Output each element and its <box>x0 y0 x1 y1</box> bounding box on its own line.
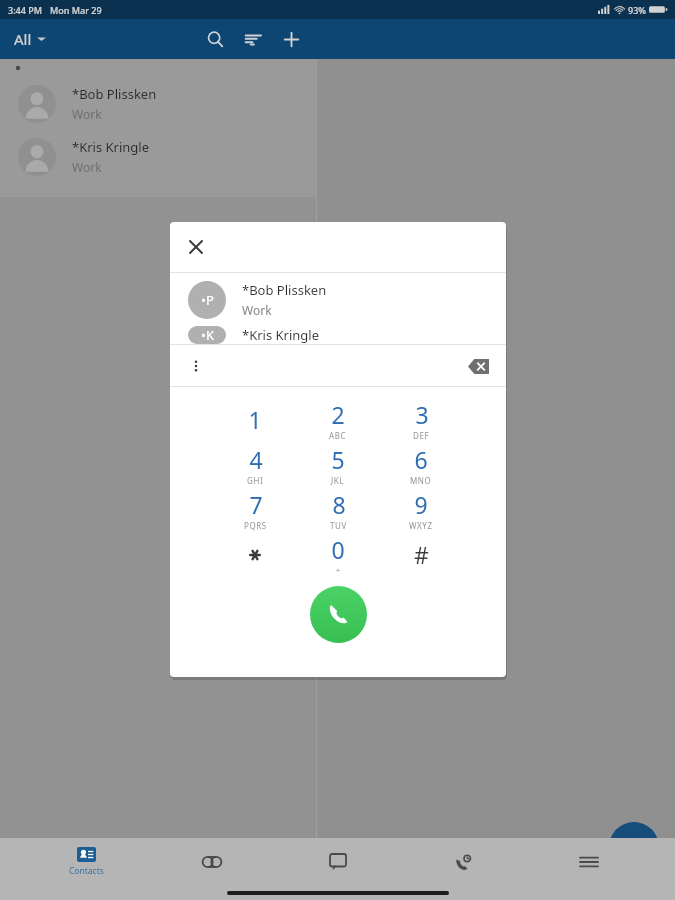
button[interactable] <box>220 532 290 577</box>
button[interactable]: *Kris Kringle <box>0 130 316 183</box>
staticText: PQRS <box>244 520 267 531</box>
staticText: *Bob Plissken <box>242 281 327 299</box>
staticText: *Kris Kringle <box>72 138 150 156</box>
staticText: •K <box>201 326 214 344</box>
staticText: + <box>336 566 341 576</box>
staticText: 4 <box>249 444 263 475</box>
staticText: *Bob Plissken <box>72 85 157 103</box>
button[interactable]: Close <box>178 229 214 265</box>
staticText: MNO <box>410 475 432 486</box>
staticText: 6 <box>414 444 428 475</box>
button[interactable]: •P <box>170 273 506 326</box>
button[interactable]: Sort <box>236 22 270 56</box>
staticText: Work <box>72 159 102 175</box>
staticText: Contacts <box>69 865 104 877</box>
button[interactable]: 2 <box>303 397 373 442</box>
button[interactable]: Tab <box>298 838 378 886</box>
button[interactable]: •K <box>170 326 506 344</box>
staticText: •P <box>201 291 214 309</box>
staticText: WXYZ <box>409 520 433 531</box>
button[interactable]: All <box>12 25 48 53</box>
staticText: # <box>414 539 429 570</box>
staticText: 2 <box>331 399 345 430</box>
button[interactable]: Tab <box>172 838 252 886</box>
staticText: *Kris Kringle <box>242 326 320 344</box>
button[interactable]: Tab <box>423 838 503 886</box>
staticText: 8 <box>332 489 346 520</box>
button[interactable]: 0 <box>303 532 373 577</box>
staticText: 0 <box>331 534 345 565</box>
button[interactable]: 1 <box>220 397 290 442</box>
staticText: GHI <box>247 475 264 486</box>
button[interactable]: Call <box>310 586 367 643</box>
staticText: 3 <box>415 399 429 430</box>
staticText: 9 <box>414 489 428 520</box>
button[interactable]: 3 <box>386 397 456 442</box>
staticText: DEF <box>413 430 430 441</box>
staticText: Mon Mar 29 <box>50 4 102 16</box>
button[interactable]: 6 <box>386 442 456 487</box>
button[interactable]: Contacts <box>46 838 126 886</box>
staticText: JKL <box>331 475 345 486</box>
button[interactable]: # <box>386 532 456 577</box>
button[interactable]: 5 <box>303 442 373 487</box>
button[interactable]: Backspace <box>458 346 498 386</box>
button[interactable]: Add contact <box>274 22 308 56</box>
staticText: 3:44 PM <box>8 4 42 16</box>
button[interactable]: Dialpad <box>609 822 659 872</box>
staticText: 93% <box>628 4 646 16</box>
button[interactable]: Tab <box>549 838 629 886</box>
button[interactable]: 7 <box>220 487 290 532</box>
staticText: Work <box>242 302 272 318</box>
staticText: 5 <box>331 444 345 475</box>
staticText: Work <box>72 106 102 122</box>
button[interactable]: 9 <box>386 487 456 532</box>
button[interactable]: Search <box>198 22 232 56</box>
staticText: 1 <box>248 404 262 435</box>
button[interactable]: 4 <box>220 442 290 487</box>
button[interactable]: 8 <box>303 487 373 532</box>
staticText: TUV <box>330 520 347 531</box>
staticText: ABC <box>329 430 347 441</box>
staticText: 7 <box>249 489 263 520</box>
button[interactable]: More options <box>178 348 214 384</box>
button[interactable]: *Bob Plissken <box>0 77 316 130</box>
staticText: All <box>14 29 32 49</box>
